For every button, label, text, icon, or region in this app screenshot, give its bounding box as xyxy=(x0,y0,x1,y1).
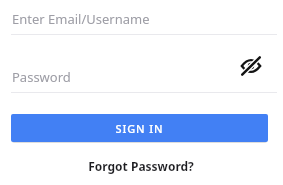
staticText: Password xyxy=(12,68,71,86)
button[interactable]: Show password xyxy=(237,52,265,80)
staticText: Enter Email/Username xyxy=(12,10,150,28)
button[interactable]: Enter Email/Username xyxy=(11,4,277,36)
button[interactable]: Password xyxy=(11,62,277,94)
button[interactable]: SIGN IN xyxy=(11,114,268,142)
staticText: SIGN IN xyxy=(115,121,164,136)
button[interactable]: Forgot Password? xyxy=(78,155,204,177)
staticText: Forgot Password? xyxy=(88,158,194,174)
